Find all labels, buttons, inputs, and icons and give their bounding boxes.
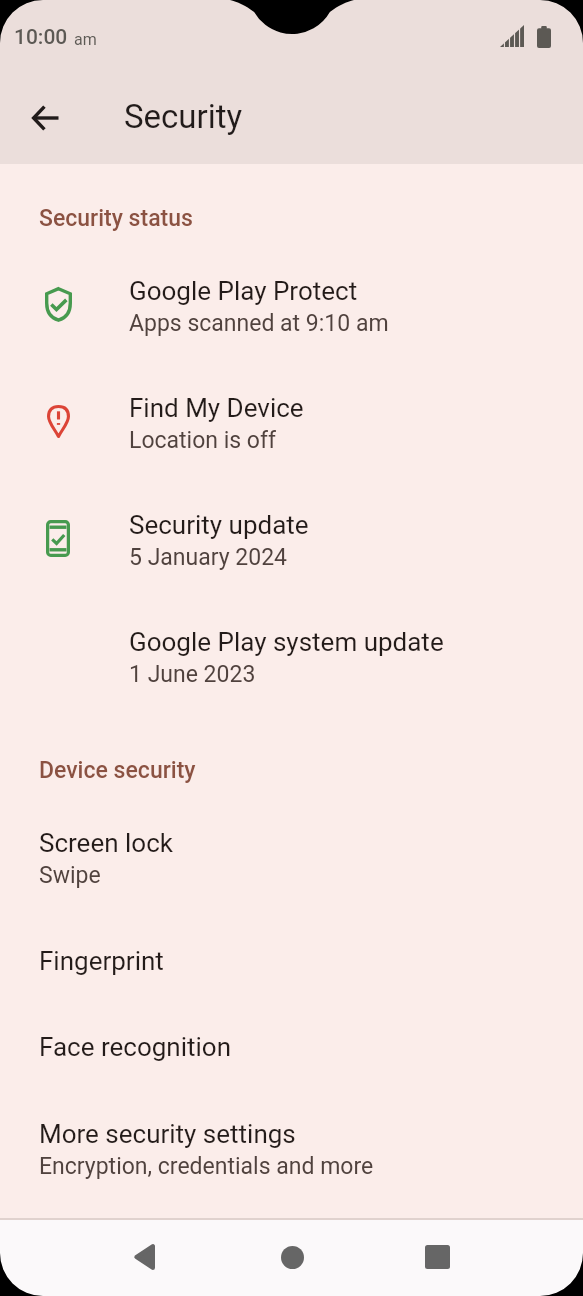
button[interactable]: Face recognition <box>0 1013 583 1099</box>
button[interactable]: Recent apps <box>389 1219 485 1295</box>
staticText: Encryption, credentials and more <box>39 1153 374 1180</box>
button[interactable]: Google Play system update <box>0 593 583 710</box>
button[interactable]: Security update <box>0 476 583 593</box>
button[interactable]: Back <box>96 1219 192 1295</box>
staticText: Device security <box>39 757 196 784</box>
staticText: Security status <box>39 205 193 232</box>
staticText: Find My Device <box>129 393 304 423</box>
button[interactable]: Find My Device <box>0 359 583 476</box>
staticText: Google Play system update <box>129 627 444 657</box>
staticText: 10:00 <box>14 25 68 50</box>
staticText: 5 January 2024 <box>129 544 288 571</box>
button[interactable]: More security settings <box>0 1100 583 1218</box>
staticText: Fingerprint <box>39 946 164 976</box>
staticText: Google Play Protect <box>129 276 358 306</box>
button[interactable]: Navigate up <box>24 94 66 142</box>
staticText: Apps scanned at 9:10 am <box>129 310 389 337</box>
button[interactable]: Fingerprint <box>0 927 583 1013</box>
staticText: 1 June 2023 <box>129 661 256 688</box>
staticText: am <box>74 30 97 49</box>
staticText: Security update <box>129 510 309 540</box>
staticText: Swipe <box>39 862 101 889</box>
staticText: Location is off <box>129 427 276 454</box>
button[interactable]: Screen lock <box>0 809 583 927</box>
staticText: More security settings <box>39 1119 296 1149</box>
button[interactable]: Google Play Protect <box>0 242 583 359</box>
button[interactable]: Home <box>244 1219 340 1295</box>
staticText: Screen lock <box>39 828 173 858</box>
staticText: Face recognition <box>39 1032 232 1062</box>
staticText: Security <box>124 97 243 136</box>
